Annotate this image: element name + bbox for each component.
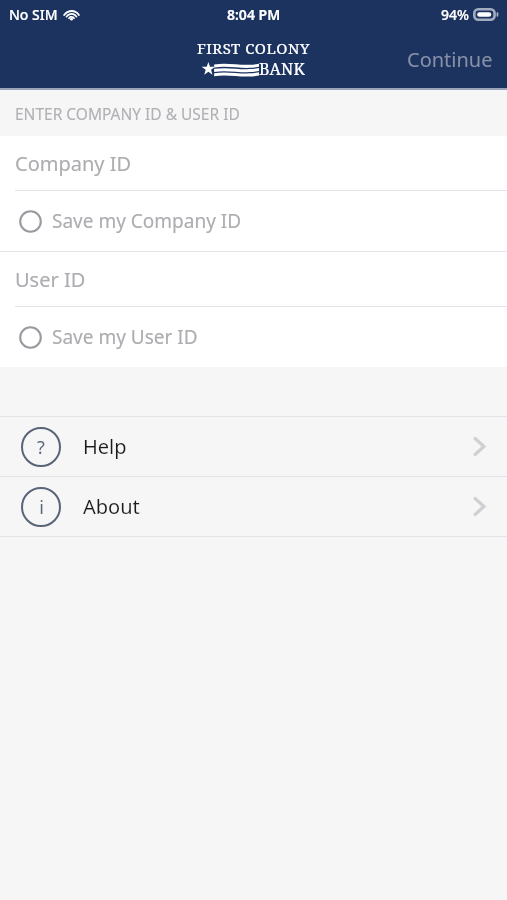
staticText: User ID: [15, 266, 86, 293]
staticText: i: [39, 495, 44, 520]
staticText: 8:04 PM: [227, 5, 281, 24]
staticText: Continue: [407, 46, 493, 73]
other: Open: [474, 497, 485, 516]
button[interactable]: Company ID: [0, 136, 507, 190]
staticText: FIRST COLONY: [197, 38, 310, 58]
button[interactable]: Continue: [393, 34, 507, 85]
staticText: No SIM: [9, 5, 58, 24]
staticText: Save my Company ID: [52, 208, 242, 234]
staticText: BANK: [259, 58, 306, 80]
staticText: Help: [83, 433, 127, 460]
button[interactable]: i: [0, 477, 507, 536]
staticText: ?: [37, 435, 45, 460]
staticText: Company ID: [15, 150, 132, 177]
button[interactable]: ?: [0, 417, 507, 476]
staticText: About: [83, 493, 140, 520]
staticText: ENTER COMPANY ID & USER ID: [15, 103, 240, 124]
other: Open: [474, 437, 485, 456]
button[interactable]: Save my User ID: [0, 307, 507, 367]
button[interactable]: Save my Company ID: [0, 191, 507, 251]
staticText: Save my User ID: [52, 324, 198, 350]
button[interactable]: User ID: [0, 252, 507, 306]
staticText: 94%: [441, 5, 469, 24]
